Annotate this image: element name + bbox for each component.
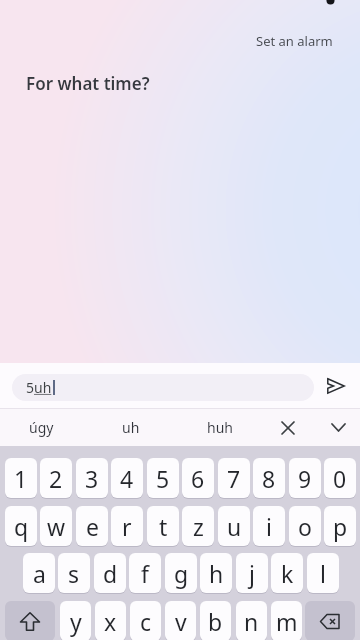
button[interactable]: 5 xyxy=(147,458,179,498)
button[interactable]: e xyxy=(76,506,108,546)
button[interactable]: m xyxy=(271,601,302,640)
staticText: f xyxy=(141,558,149,589)
button[interactable]: 6 xyxy=(182,458,214,498)
staticText: 2 xyxy=(49,463,63,494)
staticText: 7 xyxy=(227,463,241,494)
button[interactable]: r xyxy=(111,506,143,546)
button[interactable]: j xyxy=(236,553,268,593)
staticText: huh xyxy=(207,418,233,437)
staticText: g xyxy=(174,558,189,589)
button[interactable]: 1 xyxy=(5,458,37,498)
button[interactable]: c xyxy=(130,601,161,640)
staticText: u xyxy=(227,511,242,542)
button[interactable]: a xyxy=(23,553,55,593)
staticText: w xyxy=(47,511,66,542)
staticText: s xyxy=(68,558,80,589)
button[interactable]: s xyxy=(58,553,90,593)
staticText: a xyxy=(33,558,46,589)
button[interactable]: 2 xyxy=(40,458,72,498)
staticText: 6 xyxy=(191,463,205,494)
button[interactable]: u xyxy=(218,506,250,546)
staticText: k xyxy=(281,558,294,589)
staticText: h xyxy=(209,558,224,589)
staticText: 5uh xyxy=(26,378,52,397)
staticText: c xyxy=(140,606,152,637)
button[interactable]: h xyxy=(200,553,232,593)
button[interactable]: uh xyxy=(103,409,158,446)
button[interactable]: 5uh xyxy=(12,374,314,401)
staticText: l xyxy=(320,558,326,589)
button[interactable]: 9 xyxy=(289,458,321,498)
button[interactable] xyxy=(322,409,354,446)
staticText: t xyxy=(159,511,168,542)
button[interactable]: g xyxy=(165,553,197,593)
button[interactable]: 0 xyxy=(324,458,356,498)
button[interactable]: z xyxy=(182,506,214,546)
staticText: e xyxy=(86,511,99,542)
staticText: n xyxy=(244,606,259,637)
staticText: i xyxy=(266,511,272,542)
staticText: b xyxy=(208,606,223,637)
button[interactable]: o xyxy=(289,506,321,546)
staticText: 9 xyxy=(298,463,312,494)
button[interactable]: 4 xyxy=(111,458,143,498)
button[interactable]: úgy xyxy=(14,409,69,446)
staticText: For what time? xyxy=(26,72,150,95)
button[interactable]: q xyxy=(5,506,37,546)
staticText: 5 xyxy=(156,463,170,494)
button[interactable]: 8 xyxy=(253,458,285,498)
staticText: r xyxy=(122,511,132,542)
staticText: 1 xyxy=(14,463,28,494)
button[interactable]: b xyxy=(200,601,231,640)
button[interactable]: k xyxy=(271,553,303,593)
button[interactable]: 7 xyxy=(218,458,250,498)
staticText: o xyxy=(298,511,312,542)
staticText: d xyxy=(103,558,118,589)
button[interactable] xyxy=(305,601,355,640)
staticText: q xyxy=(14,511,29,542)
button[interactable]: f xyxy=(129,553,161,593)
button[interactable]: y xyxy=(60,601,91,640)
staticText: z xyxy=(193,511,204,542)
staticText: x xyxy=(104,606,117,637)
button[interactable]: t xyxy=(147,506,179,546)
button[interactable]: d xyxy=(94,553,126,593)
button[interactable] xyxy=(272,409,304,446)
button[interactable] xyxy=(5,601,55,640)
button[interactable]: n xyxy=(236,601,267,640)
button[interactable]: 3 xyxy=(76,458,108,498)
staticText: 3 xyxy=(85,463,99,494)
button[interactable]: x xyxy=(95,601,126,640)
staticText: úgy xyxy=(29,418,54,437)
button[interactable]: l xyxy=(307,553,339,593)
button[interactable] xyxy=(322,372,350,400)
staticText: uh xyxy=(122,418,140,437)
staticText: v xyxy=(175,606,187,637)
button[interactable]: huh xyxy=(192,409,247,446)
button[interactable]: Set an alarm xyxy=(250,26,339,56)
staticText: j xyxy=(249,558,255,589)
button[interactable]: i xyxy=(253,506,285,546)
button[interactable]: v xyxy=(165,601,196,640)
staticText: 0 xyxy=(333,463,347,494)
button[interactable]: p xyxy=(324,506,356,546)
staticText: y xyxy=(70,606,82,637)
button[interactable]: w xyxy=(40,506,72,546)
staticText: m xyxy=(276,606,298,637)
staticText: p xyxy=(333,511,348,542)
staticText: Set an alarm xyxy=(256,32,333,50)
staticText: 4 xyxy=(120,463,134,494)
staticText: 8 xyxy=(262,463,276,494)
